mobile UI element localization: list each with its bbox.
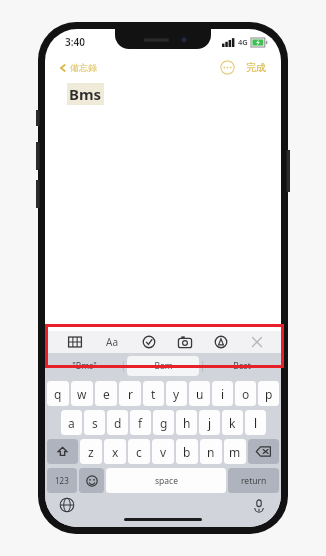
button[interactable]: r xyxy=(119,381,141,406)
button[interactable]: n xyxy=(200,439,222,464)
button[interactable]: 完成 xyxy=(243,59,269,76)
staticText: q xyxy=(54,386,62,402)
staticText: Bms xyxy=(69,84,102,104)
staticText: o xyxy=(242,386,250,402)
staticText: 123 xyxy=(55,475,69,486)
button[interactable]: Dictation xyxy=(251,497,267,513)
button[interactable]: Table xyxy=(67,334,83,350)
button[interactable]: return xyxy=(228,468,279,493)
staticText: s xyxy=(92,415,98,431)
button[interactable]: p xyxy=(258,381,279,406)
button[interactable]: space xyxy=(106,468,226,493)
staticText: d xyxy=(114,415,122,431)
staticText: n xyxy=(207,444,215,460)
staticText: return xyxy=(241,475,267,487)
button[interactable]: m xyxy=(224,439,246,464)
staticText: a xyxy=(68,415,75,431)
staticText: c xyxy=(136,444,142,460)
staticText: 備忘錄 xyxy=(70,62,97,73)
staticText: 完成 xyxy=(246,61,266,74)
staticText: t xyxy=(151,386,156,402)
button[interactable]: Delete xyxy=(248,439,279,464)
button[interactable]: Bam xyxy=(127,356,199,376)
staticText: x xyxy=(112,444,119,460)
button[interactable]: 備忘錄 xyxy=(55,60,101,75)
staticText: space xyxy=(155,475,178,487)
button[interactable]: z xyxy=(80,439,102,464)
staticText: w xyxy=(77,386,87,402)
staticText: k xyxy=(229,415,236,431)
staticText: Best xyxy=(233,360,251,372)
button[interactable]: More options xyxy=(220,60,235,75)
staticText: g xyxy=(160,415,168,431)
button[interactable]: 123 xyxy=(47,468,77,493)
button[interactable]: h xyxy=(176,410,197,435)
staticText: e xyxy=(103,386,110,402)
button[interactable]: e xyxy=(95,381,117,406)
button[interactable]: y xyxy=(166,381,187,406)
button[interactable]: l xyxy=(245,410,266,435)
button[interactable]: Camera xyxy=(177,334,193,350)
button[interactable]: f xyxy=(130,410,151,435)
staticText: Bam xyxy=(154,360,173,372)
button[interactable]: Best xyxy=(206,356,278,376)
button[interactable]: j xyxy=(199,410,220,435)
staticText: b xyxy=(183,444,191,460)
button[interactable]: v xyxy=(152,439,174,464)
button[interactable]: Shift xyxy=(47,439,78,464)
button[interactable]: x xyxy=(104,439,126,464)
staticText: l xyxy=(254,415,258,431)
staticText: m xyxy=(229,444,241,460)
button[interactable]: Markup xyxy=(213,334,229,350)
staticText: y xyxy=(173,386,180,402)
staticText: Aa xyxy=(106,335,118,349)
button[interactable]: o xyxy=(235,381,256,406)
button[interactable]: Emoji xyxy=(79,468,104,493)
staticText: "Bms" xyxy=(72,360,97,372)
staticText: j xyxy=(208,415,212,431)
staticText: 3:40 xyxy=(65,35,85,49)
button[interactable]: Switch keyboard xyxy=(59,497,75,513)
staticText: i xyxy=(221,386,225,402)
button[interactable]: s xyxy=(84,410,105,435)
staticText: p xyxy=(265,386,273,402)
button[interactable]: i xyxy=(212,381,233,406)
staticText: u xyxy=(196,386,204,402)
button[interactable]: "Bms" xyxy=(48,356,120,376)
button[interactable]: Aa xyxy=(104,333,120,351)
staticText: h xyxy=(183,415,191,431)
button[interactable]: w xyxy=(71,381,93,406)
staticText: 4G xyxy=(238,37,248,47)
button[interactable]: q xyxy=(47,381,69,406)
button[interactable]: a xyxy=(61,410,82,435)
staticText: v xyxy=(160,444,167,460)
staticText: z xyxy=(88,444,94,460)
button[interactable]: c xyxy=(128,439,150,464)
button[interactable]: Checklist xyxy=(141,334,157,350)
staticText: f xyxy=(138,415,143,431)
button[interactable]: b xyxy=(176,439,198,464)
button[interactable]: g xyxy=(153,410,174,435)
button[interactable]: d xyxy=(107,410,128,435)
button[interactable]: k xyxy=(222,410,243,435)
staticText: r xyxy=(128,386,133,402)
button[interactable]: u xyxy=(189,381,210,406)
button[interactable]: Close xyxy=(249,334,265,350)
button[interactable]: t xyxy=(143,381,164,406)
